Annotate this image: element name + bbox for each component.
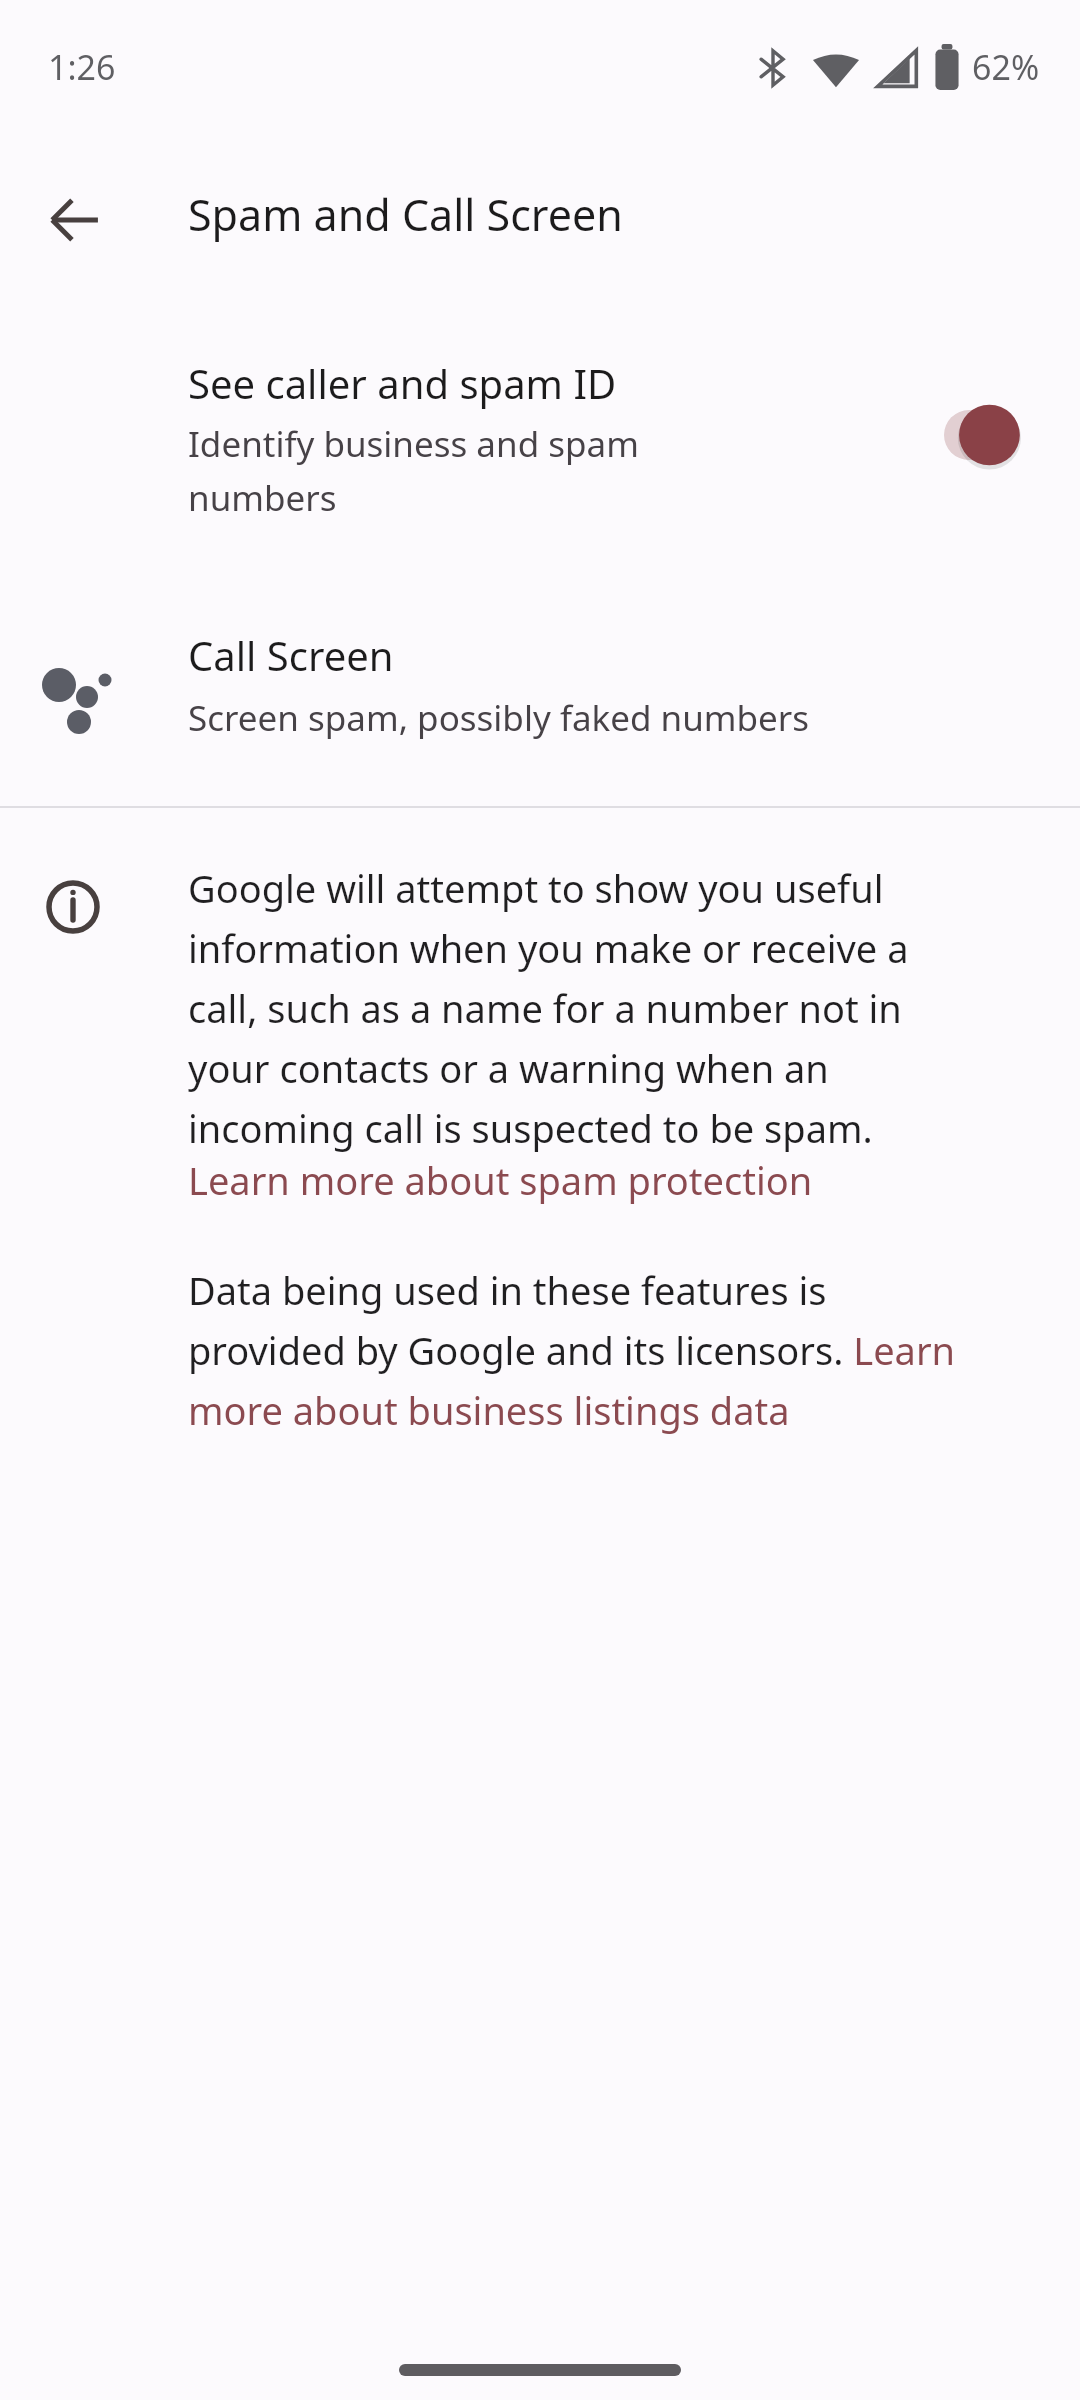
button[interactable]: Call Screen [0, 600, 1080, 800]
button[interactable]: See caller and spam ID [0, 330, 1080, 580]
staticText: Identify business and spam numbers [188, 420, 788, 521]
staticText: Learn more about spam protection [188, 1154, 813, 1206]
staticText: 62% [972, 44, 1040, 90]
staticText: 1:26 [48, 44, 116, 90]
staticText: See caller and spam ID [188, 356, 617, 410]
button[interactable]: Data being used in these features is pro… [188, 1264, 978, 1436]
button[interactable]: Learn more about spam protection [188, 1154, 813, 1206]
staticText: Screen spam, possibly faked numbers [188, 694, 810, 742]
staticText: Call Screen [188, 628, 394, 682]
staticText: Data being used in these features is pro… [188, 1264, 978, 1436]
staticText: Spam and Call Screen [188, 185, 623, 244]
button[interactable]: See caller and spam ID toggle [930, 402, 1040, 468]
staticText: Google will attempt to show you useful i… [188, 862, 978, 1154]
other: Information [46, 880, 100, 934]
button[interactable]: Back [24, 170, 124, 270]
